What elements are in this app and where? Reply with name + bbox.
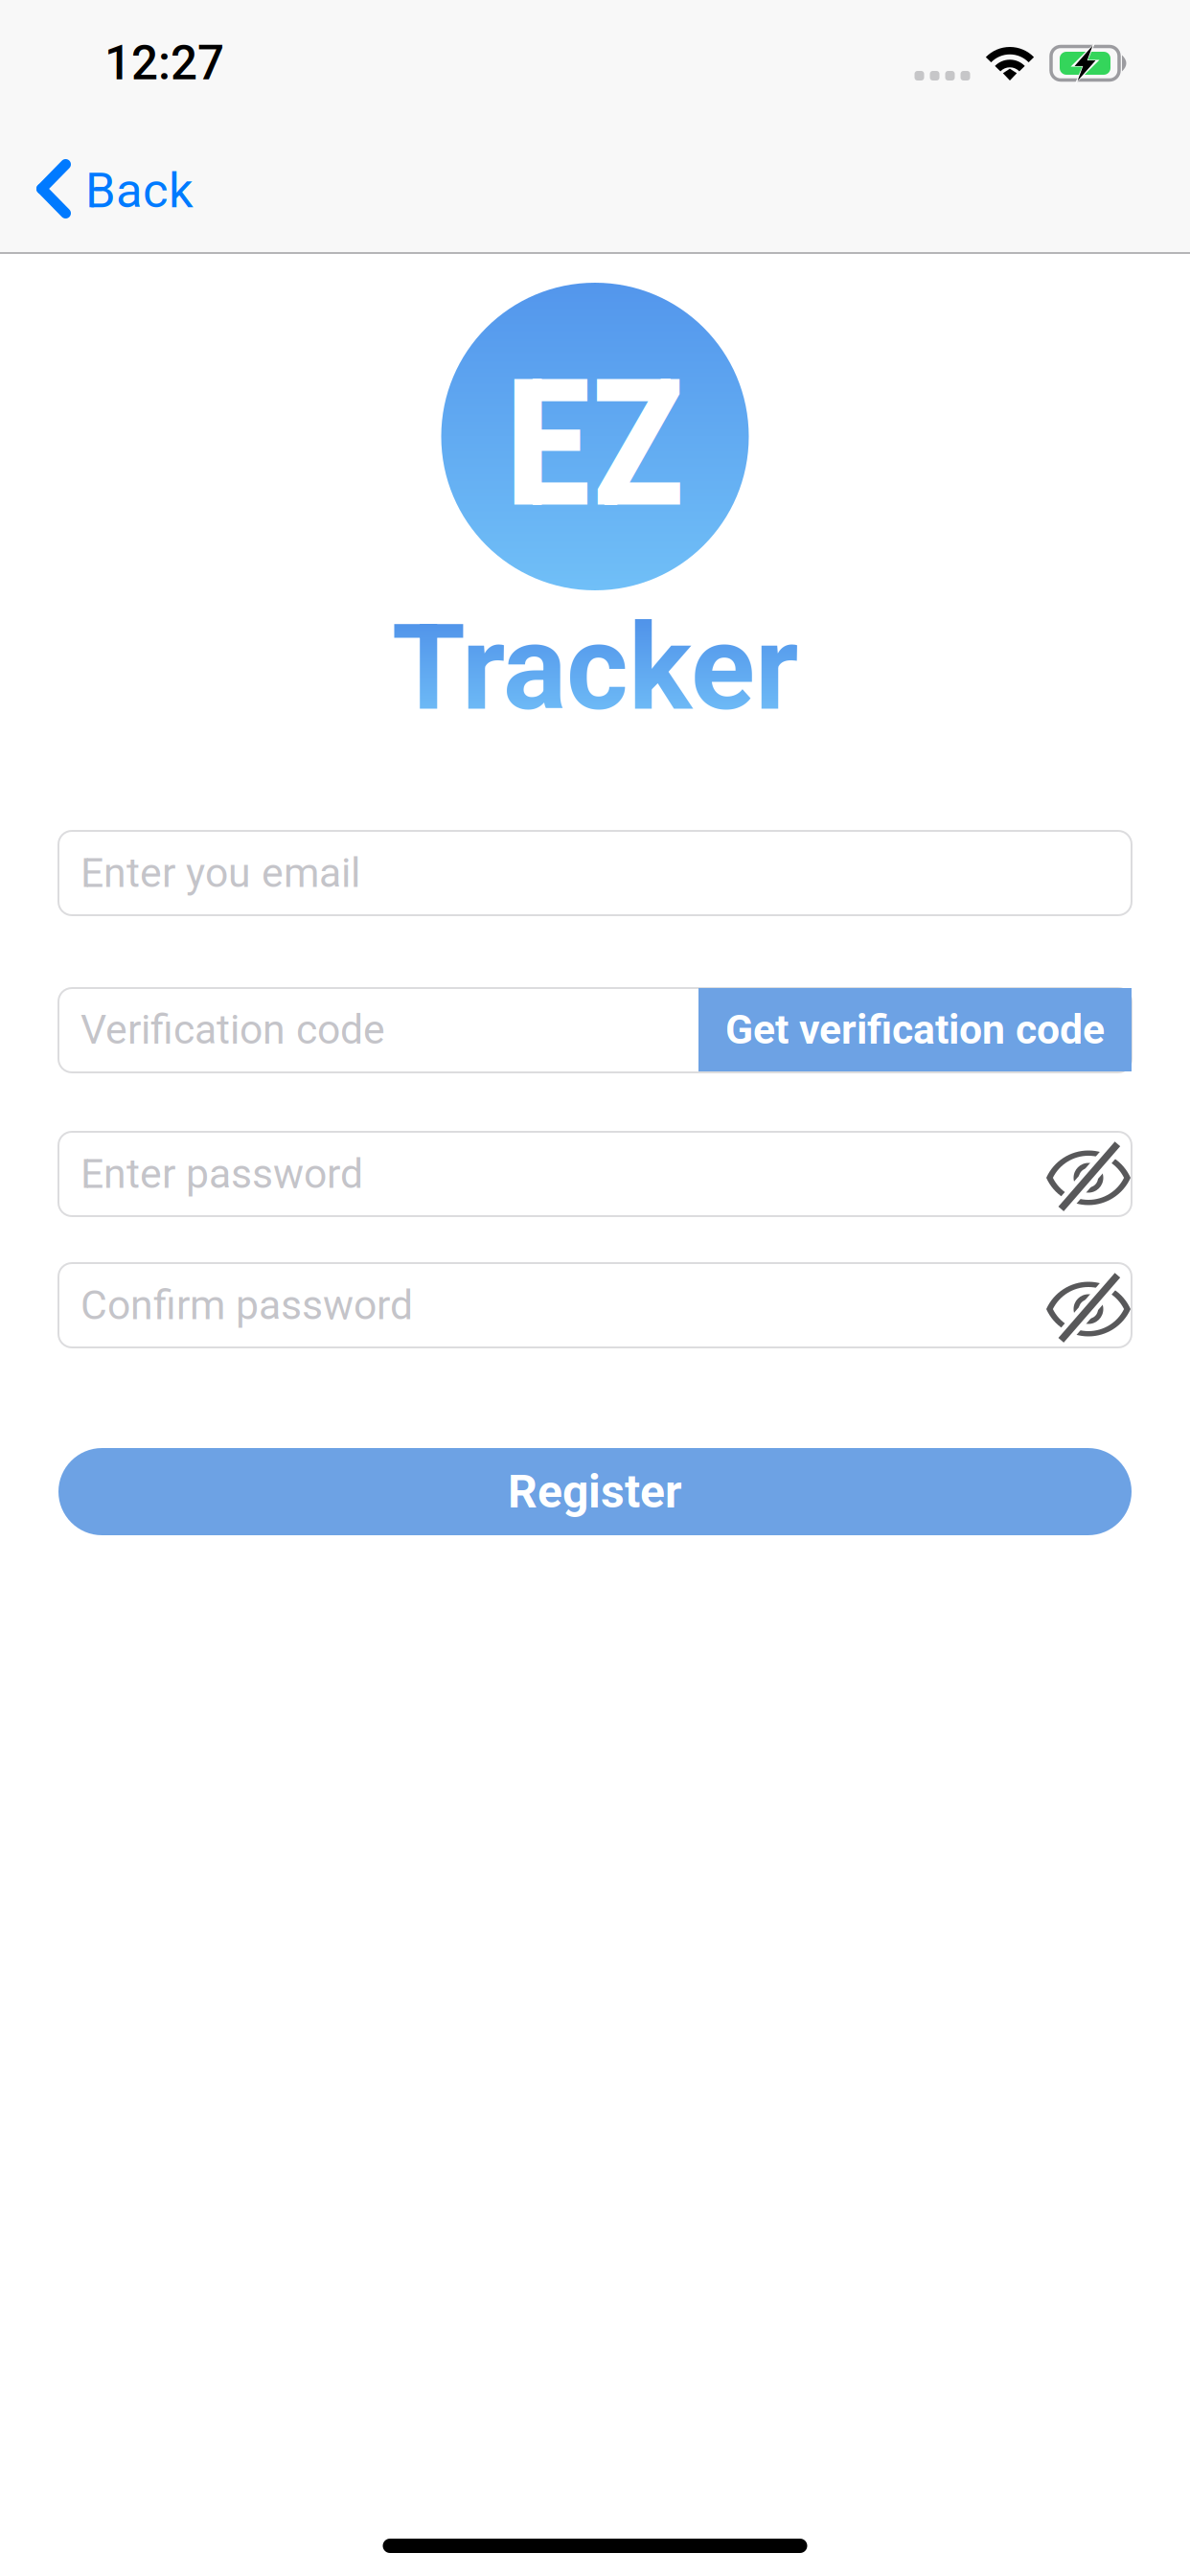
- staticText: Enter you email: [80, 849, 360, 897]
- staticText: 12:27: [104, 36, 224, 91]
- button[interactable]: Show password: [1045, 1132, 1132, 1216]
- staticText: Register: [508, 1465, 682, 1519]
- button[interactable]: Show password: [1045, 1263, 1132, 1347]
- button[interactable]: Register: [58, 1448, 1132, 1535]
- button[interactable]: Back: [0, 126, 217, 251]
- staticText: Verification code: [80, 1006, 385, 1054]
- staticText: Get verification code: [725, 1006, 1105, 1054]
- staticText: EZ: [505, 341, 685, 547]
- button[interactable]: Get verification code: [698, 988, 1132, 1071]
- staticText: Back: [85, 162, 194, 219]
- staticText: Enter password: [80, 1150, 363, 1198]
- staticText: Confirm password: [80, 1281, 413, 1329]
